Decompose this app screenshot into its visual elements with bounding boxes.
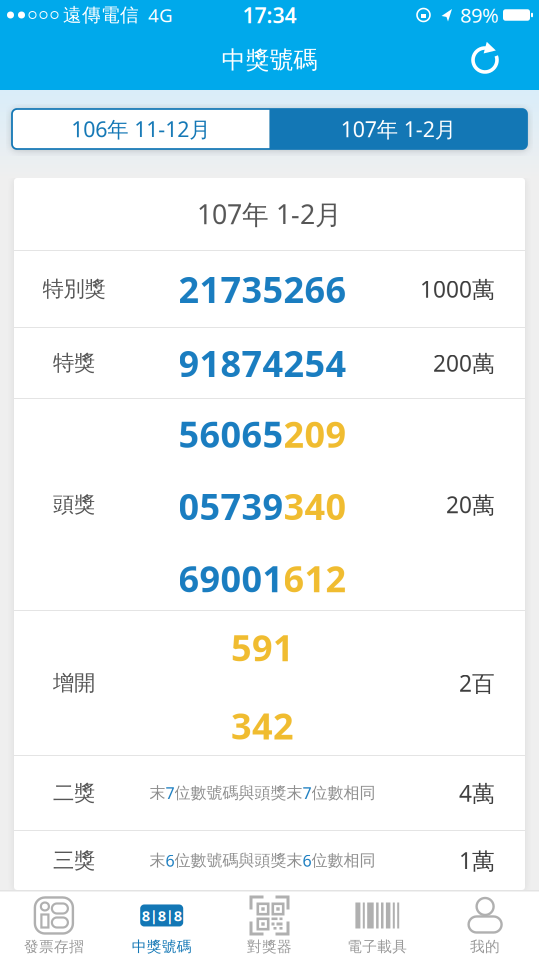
- staticText: 4萬: [459, 778, 495, 808]
- staticText: 末: [149, 783, 165, 803]
- staticText: 340: [283, 482, 346, 530]
- button[interactable]: 發票存摺: [0, 891, 108, 959]
- staticText: 頭獎: [53, 491, 95, 518]
- staticText: 我的: [470, 937, 500, 955]
- staticText: 電子載具: [347, 937, 407, 955]
- staticText: 21735266: [178, 265, 346, 313]
- staticText: 遠傳電信: [63, 3, 139, 26]
- staticText: 中獎號碼: [132, 937, 192, 955]
- button[interactable]: 106年 11-12月: [12, 109, 269, 149]
- staticText: 20萬: [446, 489, 495, 519]
- staticText: 中獎號碼: [221, 45, 317, 75]
- staticText: 209: [283, 410, 346, 458]
- staticText: 91874254: [178, 339, 346, 387]
- staticText: 591: [231, 623, 294, 671]
- staticText: 對獎器: [247, 937, 292, 955]
- staticText: 8|8|8: [142, 906, 182, 925]
- button[interactable]: 電子載具: [323, 891, 431, 959]
- staticText: 特獎: [53, 350, 95, 376]
- staticText: 612: [283, 554, 346, 602]
- staticText: 17:34: [242, 1, 296, 29]
- staticText: 末: [149, 851, 165, 870]
- staticText: 位數號碼與頭獎末: [174, 783, 302, 803]
- button[interactable]: 107年 1-2月: [269, 109, 527, 149]
- staticText: 6: [302, 850, 311, 871]
- button[interactable]: 重新整理: [471, 46, 499, 74]
- staticText: 2百: [459, 668, 495, 698]
- staticText: 107年 1-2月: [197, 196, 342, 232]
- staticText: 6: [165, 850, 174, 871]
- staticText: 特別獎: [42, 276, 105, 302]
- staticText: 05739: [178, 482, 283, 530]
- staticText: 發票存摺: [24, 937, 84, 955]
- staticText: 56065: [178, 410, 283, 458]
- staticText: 106年 11-12月: [71, 115, 210, 143]
- staticText: 69001: [178, 554, 283, 602]
- staticText: 增開: [53, 670, 95, 696]
- staticText: 1萬: [459, 845, 495, 875]
- staticText: 200萬: [433, 348, 495, 378]
- staticText: 位數相同: [311, 851, 375, 870]
- staticText: 7: [165, 782, 174, 804]
- staticText: 位數相同: [311, 783, 375, 803]
- staticText: 342: [231, 702, 294, 750]
- staticText: 4G: [148, 3, 173, 27]
- staticText: 位數號碼與頭獎末: [174, 851, 302, 870]
- staticText: 89%: [460, 2, 499, 28]
- button[interactable]: 8|8|8: [108, 891, 216, 959]
- button[interactable]: 我的: [431, 891, 539, 959]
- staticText: 二獎: [53, 780, 95, 806]
- staticText: 1000萬: [420, 274, 495, 304]
- staticText: 107年 1-2月: [341, 115, 456, 143]
- staticText: 7: [302, 782, 311, 804]
- staticText: 三獎: [53, 847, 95, 874]
- button[interactable]: 對獎器: [216, 891, 323, 959]
